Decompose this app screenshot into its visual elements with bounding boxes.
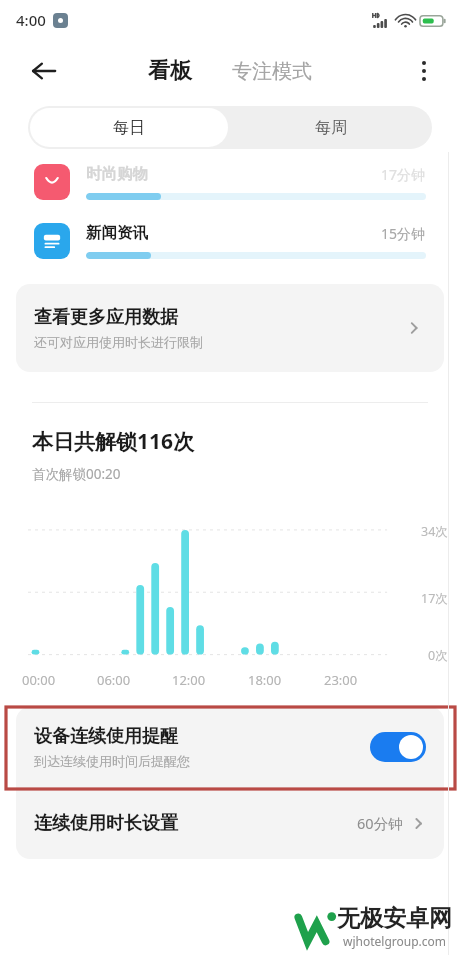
staticText: 看板: [148, 57, 192, 85]
staticText: 17次: [421, 590, 448, 607]
staticText: 4:00: [16, 10, 46, 30]
button[interactable]: Back: [22, 49, 66, 93]
staticText: 34次: [421, 523, 448, 540]
button[interactable]: 设备连续使用提醒: [16, 707, 444, 787]
button[interactable]: Toggle device usage reminder: [370, 732, 426, 762]
button[interactable]: 连续使用时长设置: [16, 787, 444, 859]
button[interactable]: 看板: [140, 51, 200, 91]
staticText: 时尚购物: [86, 164, 381, 184]
button[interactable]: More options: [402, 49, 446, 93]
staticText: 到达连续使用时间后提醒您: [34, 753, 190, 769]
staticText: 00:00: [22, 671, 56, 689]
staticText: 每周: [315, 118, 347, 138]
staticText: 查看更多应用数据: [34, 306, 178, 329]
staticText: 06:00: [97, 671, 131, 689]
button[interactable]: 每周: [230, 106, 432, 149]
staticText: 23:00: [324, 671, 358, 689]
staticText: 每日: [113, 118, 145, 138]
staticText: 连续使用时长设置: [34, 812, 357, 835]
staticText: 首次解锁00:20: [32, 465, 121, 483]
button[interactable]: 每日: [30, 108, 228, 147]
staticText: 12:00: [172, 671, 206, 689]
button[interactable]: 新闻资讯: [16, 211, 444, 270]
button[interactable]: 时尚购物: [16, 152, 444, 211]
staticText: 本日共解锁116次: [32, 427, 195, 456]
staticText: 还可对应用使用时长进行限制: [34, 334, 203, 350]
staticText: 17分钟: [381, 165, 426, 184]
button[interactable]: 查看更多应用数据: [16, 284, 444, 372]
staticText: 新闻资讯: [86, 223, 381, 243]
staticText: wjhotelgroup.com: [343, 933, 447, 949]
staticText: 无极安卓网: [337, 904, 452, 933]
staticText: 设备连续使用提醒: [34, 725, 178, 748]
staticText: 0次: [428, 647, 448, 664]
staticText: 15分钟: [381, 224, 426, 243]
button[interactable]: 专注模式: [224, 53, 320, 90]
staticText: 60分钟: [357, 813, 403, 833]
staticText: 专注模式: [232, 59, 312, 84]
staticText: 18:00: [248, 671, 282, 689]
